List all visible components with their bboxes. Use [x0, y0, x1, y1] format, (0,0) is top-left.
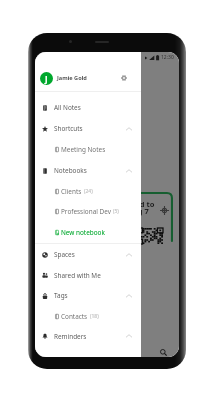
staticText: (24) — [84, 188, 93, 195]
staticText: Spaces — [54, 250, 75, 259]
button[interactable]: Reminders — [35, 326, 141, 346]
staticText: 12:30 — [161, 54, 174, 61]
staticText: Clients — [61, 187, 82, 196]
button[interactable]: Spaces — [35, 244, 141, 265]
button[interactable]: Notebooks — [35, 160, 141, 181]
staticText: Jamie Gold — [57, 74, 87, 82]
button[interactable]: Professional Dev — [35, 201, 141, 222]
staticText: Reminder added to — [83, 199, 155, 209]
button[interactable]: J — [35, 65, 141, 91]
button[interactable]: Shared with Me — [35, 265, 141, 285]
button[interactable]: Tags — [35, 285, 141, 306]
staticText: Shortcuts — [54, 124, 83, 133]
staticText: Meeting Notes — [61, 145, 106, 154]
button[interactable]: Contacts — [35, 306, 141, 326]
button[interactable]: All Notes — [35, 97, 141, 118]
staticText: Shared with Me — [54, 271, 101, 280]
staticText: Reminders — [54, 332, 87, 341]
staticText: (5) — [113, 208, 119, 215]
button[interactable]: Settings — [117, 71, 131, 85]
staticText: J — [45, 73, 48, 84]
button[interactable]: Clients — [35, 181, 141, 201]
button[interactable]: New notebook — [35, 222, 141, 243]
staticText: All Notes — [54, 103, 81, 112]
staticText: Project Meeting 7 — [83, 206, 149, 216]
staticText: Notebooks — [54, 166, 87, 175]
button[interactable]: Shortcuts — [35, 118, 141, 139]
button[interactable]: Meeting Notes — [35, 139, 141, 160]
staticText: Professional Dev — [61, 207, 111, 216]
staticText: Tags — [54, 291, 68, 300]
staticText: Contacts — [61, 312, 88, 321]
staticText: New notebook — [61, 228, 105, 237]
staticText: (18) — [90, 313, 99, 320]
